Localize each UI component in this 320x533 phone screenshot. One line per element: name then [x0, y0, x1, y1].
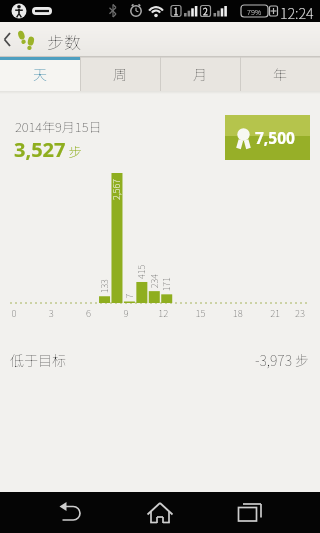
button[interactable]: 周 [80, 57, 160, 91]
staticText: 2014年9月15日 [15, 117, 102, 136]
staticText: 步数 [47, 29, 81, 54]
staticText: 12:24 [280, 2, 314, 23]
button[interactable] [0, 492, 106, 533]
staticText: 3,527 步 [14, 136, 82, 163]
staticText: 月 [193, 64, 207, 84]
button[interactable]: 天 [0, 57, 80, 91]
staticText: 周 [113, 64, 127, 84]
staticText: -3,973 步 [255, 350, 310, 370]
button[interactable] [213, 492, 320, 533]
staticText: 天 [33, 64, 47, 84]
button[interactable]: 年 [240, 57, 320, 91]
staticText: 低于目标 [10, 350, 66, 370]
button[interactable]: 月 [160, 57, 240, 91]
button[interactable]: 7,500 [225, 115, 310, 160]
staticText: 年 [273, 64, 287, 84]
button[interactable] [106, 492, 213, 533]
staticText: 7,500 [255, 127, 295, 148]
